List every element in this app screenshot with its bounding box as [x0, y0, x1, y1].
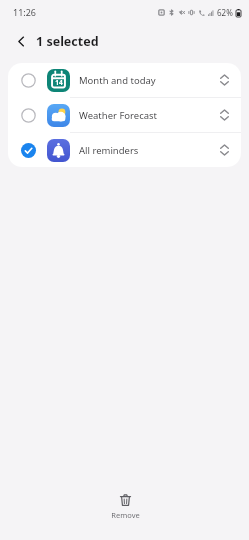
staticText: 11:26 — [13, 6, 37, 18]
button[interactable]: 14 — [8, 63, 241, 97]
staticText: Month and today — [79, 74, 211, 87]
staticText: 14 — [55, 78, 63, 87]
staticText: 62% — [217, 7, 233, 18]
button[interactable]: Back — [8, 28, 34, 54]
staticText: Weather Forecast — [79, 109, 211, 122]
staticText: Remove — [111, 510, 140, 520]
button[interactable]: Remove — [93, 494, 157, 520]
button[interactable]: All reminders — [8, 133, 241, 167]
button[interactable]: Weather Forecast — [8, 98, 241, 132]
staticText: All reminders — [79, 144, 211, 157]
button[interactable]: Reorder — [211, 102, 237, 128]
button[interactable]: Reorder — [211, 67, 237, 93]
staticText: 1 selected — [36, 33, 99, 50]
button[interactable]: Reorder — [211, 137, 237, 163]
